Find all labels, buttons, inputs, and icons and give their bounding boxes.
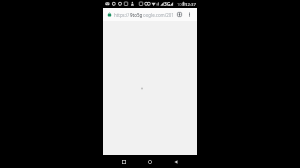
staticText: oogle.com/201 (143, 12, 174, 18)
staticText: 9to5g (130, 12, 143, 18)
button[interactable]: https:// (114, 8, 174, 21)
staticText: https:// (114, 12, 130, 18)
staticText: 3G (164, 1, 171, 8)
button[interactable]: Recents (118, 156, 129, 167)
staticText: 12:37 (185, 1, 196, 7)
button[interactable]: More options (186, 8, 193, 21)
button[interactable]: Page info (176, 8, 183, 21)
button[interactable]: Home (144, 156, 155, 167)
staticText: 100% (177, 2, 188, 7)
button[interactable]: Back (170, 156, 181, 167)
